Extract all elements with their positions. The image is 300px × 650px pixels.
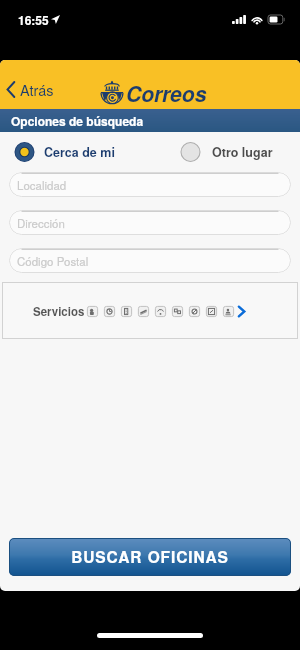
staticText: Otro lugar xyxy=(212,143,273,161)
staticText: Código Postal xyxy=(17,253,89,269)
staticText: Servicios xyxy=(33,303,85,319)
staticText: Opciones de búsqueda xyxy=(11,112,144,129)
button[interactable]: Otro lugar xyxy=(180,142,273,162)
staticText: Correos xyxy=(126,78,207,108)
button[interactable]: BUSCAR OFICINAS xyxy=(9,538,291,576)
staticText: Localidad xyxy=(17,177,67,193)
other: Más servicios xyxy=(238,306,245,317)
button[interactable]: Código Postal xyxy=(9,248,291,273)
staticText: Dirección xyxy=(17,215,65,231)
staticText: BUSCAR OFICINAS xyxy=(71,546,229,568)
button[interactable]: Localidad xyxy=(9,172,291,197)
staticText: Atrás xyxy=(20,79,54,100)
staticText: Cerca de mi xyxy=(44,143,115,161)
button[interactable]: Atrás xyxy=(0,73,64,106)
staticText: 16:55 xyxy=(18,11,49,28)
button[interactable]: Cerca de mi xyxy=(14,142,115,162)
button[interactable]: Servicios xyxy=(2,282,298,339)
button[interactable]: Dirección xyxy=(9,210,291,235)
